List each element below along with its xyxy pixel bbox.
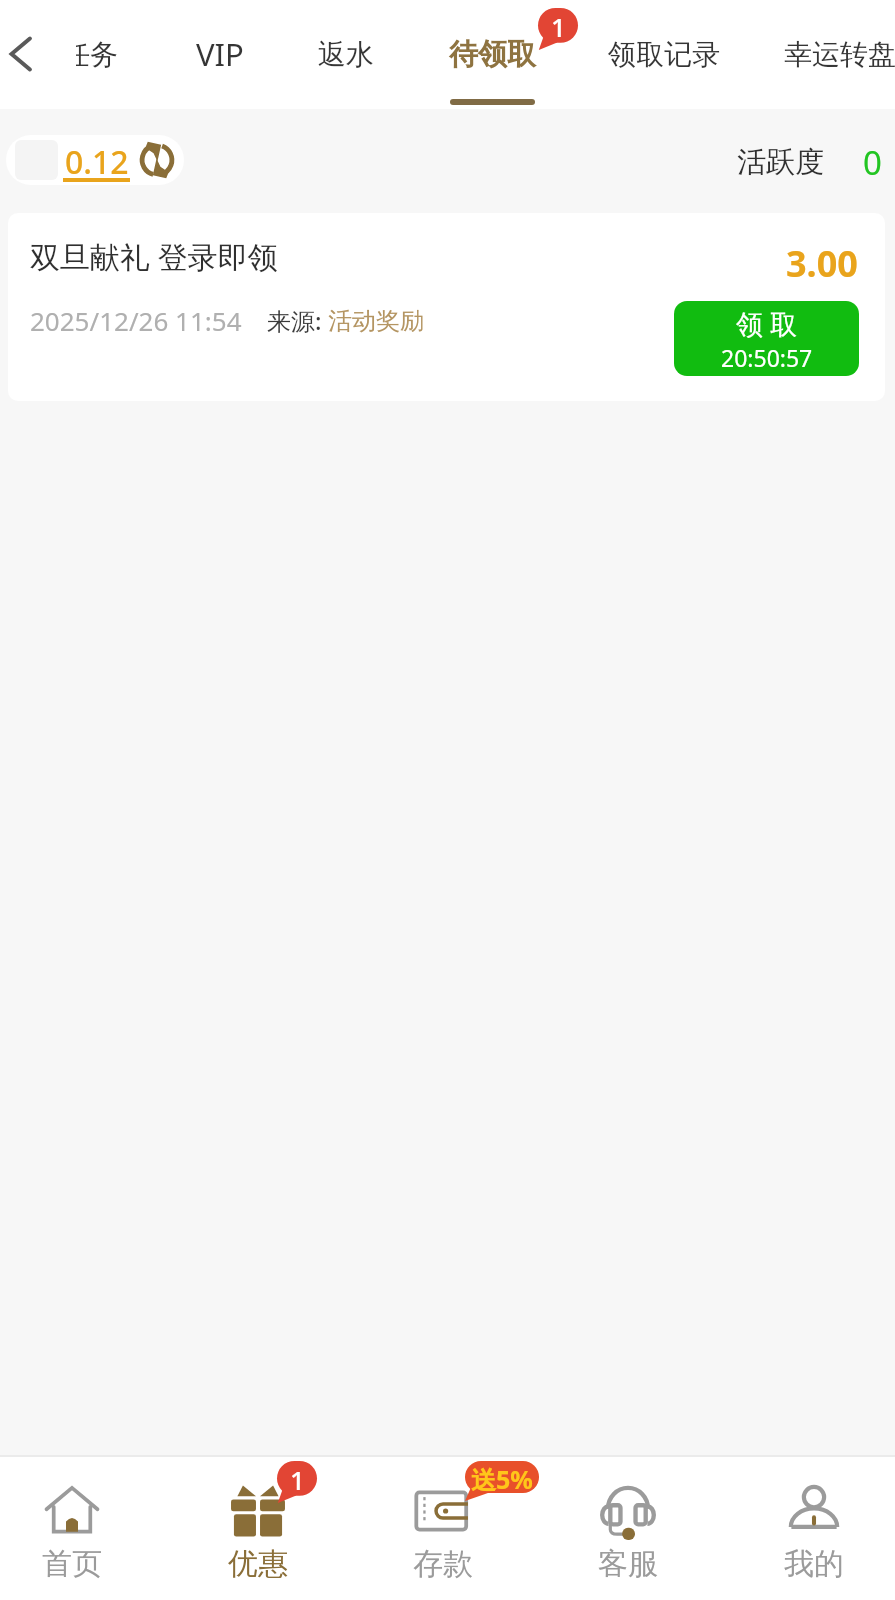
staticText: 存款 xyxy=(413,1545,473,1583)
staticText: 活动奖励 xyxy=(328,306,424,336)
button[interactable]: Back xyxy=(0,0,76,100)
staticText: 20:50:57 xyxy=(721,342,813,373)
staticText: 返水 xyxy=(318,37,374,72)
staticText: 首页 xyxy=(42,1545,102,1583)
button[interactable]: 待领取 xyxy=(449,4,536,104)
button[interactable]: 双旦献礼 登录即领 xyxy=(8,213,885,401)
staticText: 送5% xyxy=(471,1462,533,1496)
button[interactable]: Refresh xyxy=(135,138,179,182)
button[interactable]: 领 取 xyxy=(674,301,859,376)
staticText: 我的 xyxy=(784,1545,844,1583)
button[interactable]: 任务 xyxy=(62,4,118,104)
staticText: 活跃度 xyxy=(737,144,824,181)
button[interactable]: 返水 xyxy=(318,4,374,104)
staticText: 任务 xyxy=(62,37,118,72)
button[interactable]: 领取记录 xyxy=(608,4,720,104)
button[interactable]: 0.12 xyxy=(6,135,184,185)
staticText: 待领取 xyxy=(449,36,536,73)
staticText: 幸运转盘 xyxy=(784,37,895,72)
button[interactable]: VIP xyxy=(196,4,244,104)
button[interactable]: 幸运转盘 xyxy=(784,4,895,104)
staticText: 1 xyxy=(551,9,566,44)
button[interactable]: 1 xyxy=(166,1457,350,1600)
staticText: VIP xyxy=(196,33,244,75)
button[interactable]: 我的 xyxy=(722,1457,895,1600)
staticText: 0.12 xyxy=(65,140,129,184)
staticText: 1 xyxy=(290,1462,305,1497)
staticText: 领取记录 xyxy=(608,37,720,72)
staticText: 0 xyxy=(863,140,882,185)
staticText: 来源: xyxy=(267,304,328,337)
staticText: 领 取 xyxy=(736,305,798,342)
button[interactable]: 送5% xyxy=(351,1457,535,1600)
button[interactable]: 首页 xyxy=(0,1457,164,1600)
staticText: 3.00 xyxy=(786,239,858,288)
staticText: 优惠 xyxy=(228,1545,288,1583)
staticText: 客服 xyxy=(598,1545,658,1583)
staticText: 2025/12/26 11:54 xyxy=(30,303,242,338)
staticText: 双旦献礼 登录即领 xyxy=(30,236,278,277)
button[interactable]: 客服 xyxy=(536,1457,720,1600)
